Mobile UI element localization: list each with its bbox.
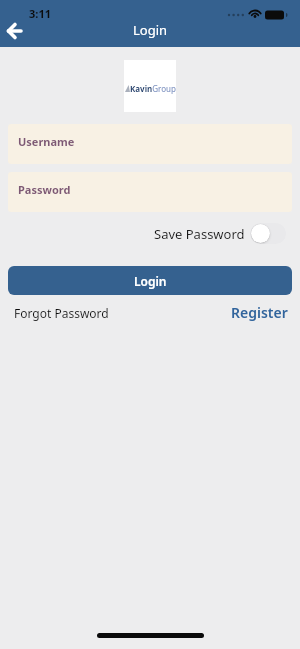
button[interactable]: Forgot Password [14, 305, 109, 321]
staticText: 3:11 [29, 6, 51, 21]
staticText: Username [18, 134, 75, 149]
staticText: Login [133, 21, 168, 39]
staticText: Password [18, 182, 71, 197]
button[interactable]: Register [231, 303, 288, 322]
button[interactable] [250, 223, 286, 244]
button[interactable]: Password [8, 172, 292, 212]
staticText: Login [134, 273, 167, 289]
button[interactable]: Username [8, 124, 292, 164]
staticText: Save Password [154, 225, 245, 243]
staticText: KavinGroup [130, 83, 176, 94]
button[interactable] [0, 0, 40, 47]
button[interactable]: Login [8, 266, 292, 295]
